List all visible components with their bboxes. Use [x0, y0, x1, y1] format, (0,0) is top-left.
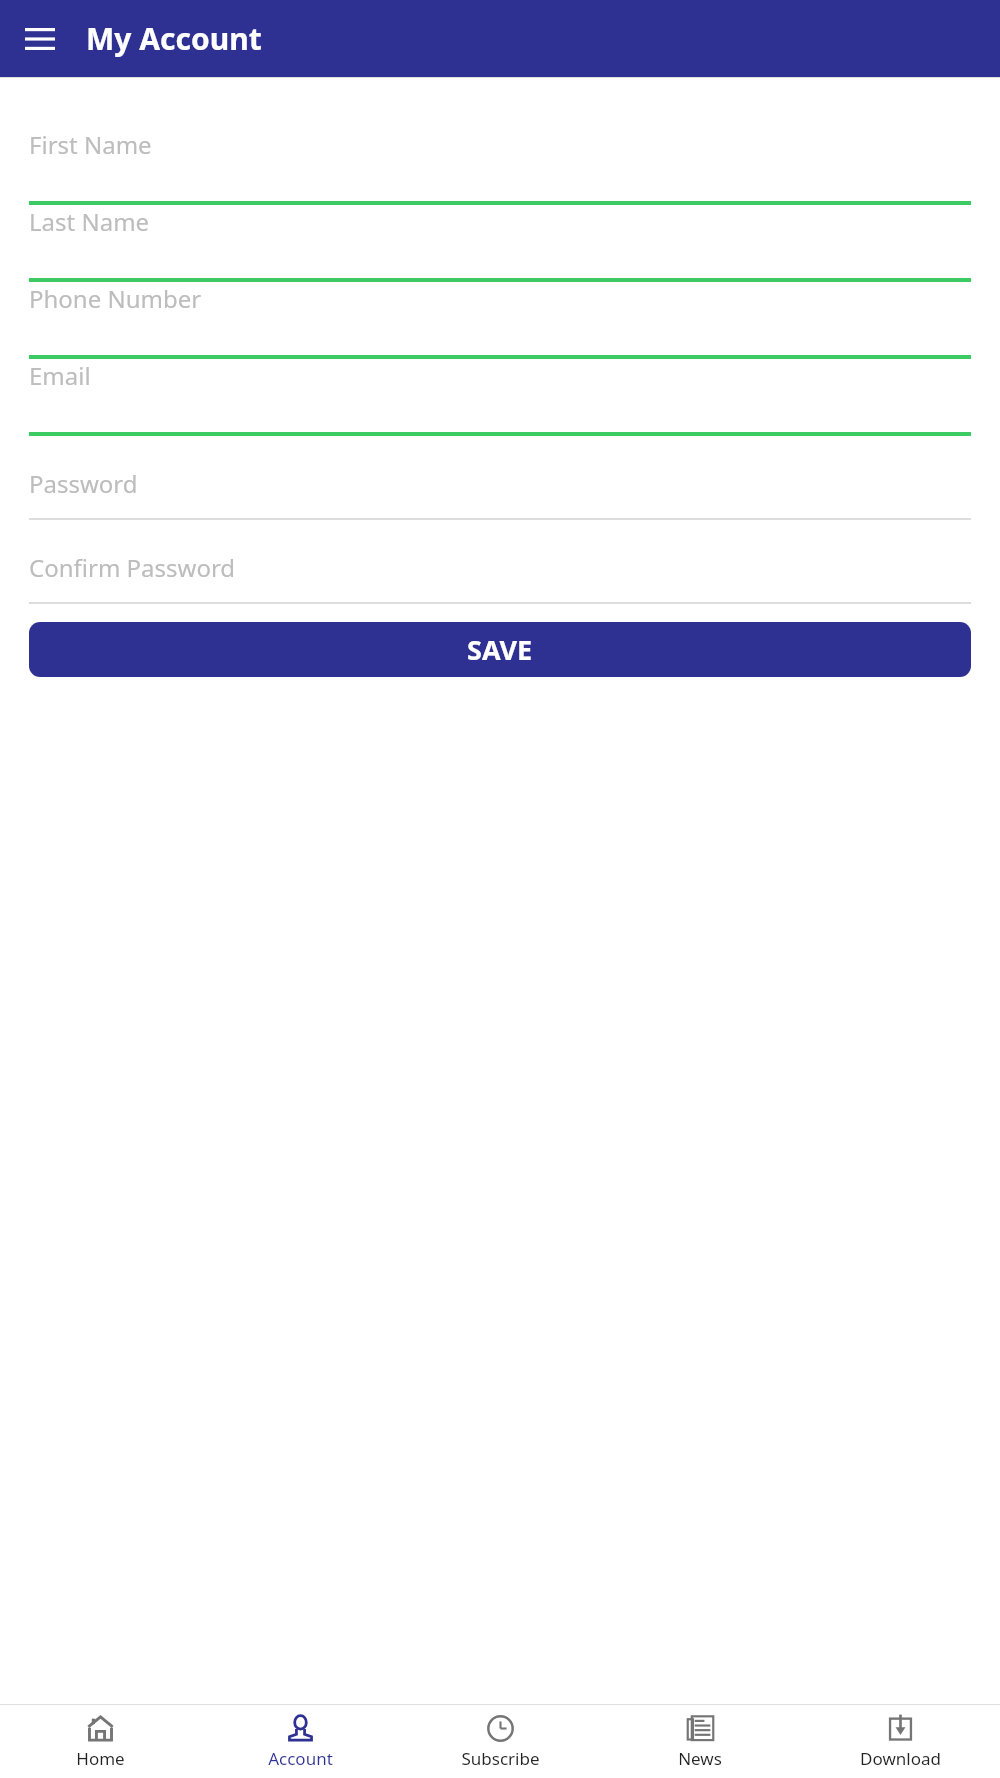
button[interactable]: Account: [200, 1705, 400, 1778]
button[interactable]: SAVE: [29, 622, 971, 677]
staticText: Phone Number: [29, 282, 202, 315]
staticText: Confirm Password: [29, 551, 236, 584]
button[interactable]: Open navigation menu: [14, 13, 66, 65]
staticText: Password: [29, 467, 138, 500]
staticText: Email: [29, 359, 91, 392]
staticText: Download: [860, 1747, 941, 1770]
staticText: News: [678, 1747, 722, 1770]
button[interactable]: Home: [0, 1705, 200, 1778]
button[interactable]: Download: [800, 1705, 1000, 1778]
staticText: Home: [76, 1747, 125, 1770]
staticText: SAVE: [467, 631, 533, 668]
button[interactable]: News: [600, 1705, 800, 1778]
staticText: Subscribe: [461, 1747, 540, 1770]
staticText: First Name: [29, 128, 152, 161]
button[interactable]: Password: [0, 436, 1000, 520]
staticText: Account: [268, 1747, 333, 1770]
button[interactable]: Confirm Password: [0, 520, 1000, 604]
button[interactable]: Subscribe: [400, 1705, 600, 1778]
button[interactable]: Last Name: [0, 205, 1000, 282]
button[interactable]: Email: [0, 359, 1000, 436]
staticText: Last Name: [29, 205, 150, 238]
staticText: My Account: [86, 18, 262, 59]
button[interactable]: First Name: [0, 128, 1000, 205]
button[interactable]: Phone Number: [0, 282, 1000, 359]
